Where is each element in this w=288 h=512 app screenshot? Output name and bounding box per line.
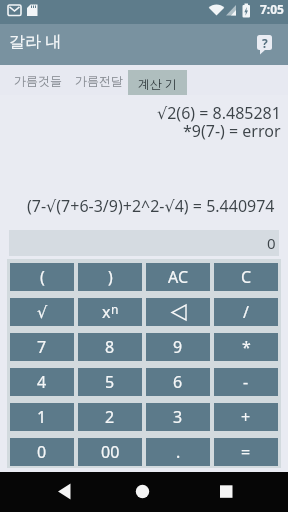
staticText: *9(7-) = error <box>183 120 281 142</box>
button[interactable]: 2 <box>78 403 142 431</box>
staticText: (7-√(7+6-3/9)+2^2-√4) = 5.440974 <box>27 195 275 217</box>
staticText: = <box>241 441 251 463</box>
staticText: 9 <box>173 336 183 358</box>
staticText: n <box>111 301 119 317</box>
staticText: / <box>243 301 249 323</box>
button[interactable]: 6 <box>146 368 210 396</box>
button[interactable]: + <box>214 403 278 431</box>
button[interactable]: 0 <box>10 438 74 466</box>
button[interactable]: = <box>214 438 278 466</box>
staticText: ( <box>40 266 45 288</box>
staticText: + <box>241 406 251 428</box>
button[interactable]: C <box>214 263 278 291</box>
button[interactable]: 7 <box>10 333 74 361</box>
staticText: . <box>176 441 181 463</box>
staticText: 8 <box>105 336 115 358</box>
button[interactable]: 9 <box>146 333 210 361</box>
button[interactable]: - <box>214 368 278 396</box>
button[interactable]: 가름것들 <box>7 65 68 95</box>
button[interactable]: 가름전달 <box>68 65 129 95</box>
staticText: √2(6) = 8.485281 <box>157 102 281 124</box>
button[interactable]: AC <box>146 263 210 291</box>
staticText: 5 <box>105 371 115 393</box>
button[interactable] <box>192 472 288 512</box>
staticText: ? <box>262 35 268 51</box>
button[interactable]: 00 <box>78 438 142 466</box>
staticText: 00 <box>101 441 120 463</box>
staticText: √ <box>37 303 48 322</box>
button[interactable]: ? <box>257 35 273 55</box>
staticText: 가름것들 <box>14 73 62 88</box>
button[interactable]: / <box>214 298 278 326</box>
staticText: 6 <box>173 371 183 393</box>
button[interactable]: x <box>78 298 142 326</box>
button[interactable]: 4 <box>10 368 74 396</box>
button[interactable]: 8 <box>78 333 142 361</box>
staticText: 7 <box>37 336 47 358</box>
button[interactable]: √ <box>10 298 74 326</box>
staticText: ) <box>108 266 113 288</box>
staticText: x <box>102 301 111 323</box>
staticText: 7:05 <box>260 1 284 17</box>
staticText: 가름전달 <box>75 73 123 88</box>
button[interactable] <box>96 472 192 512</box>
button[interactable]: 3 <box>146 403 210 431</box>
button[interactable] <box>0 472 96 512</box>
staticText: 갈라 내 <box>9 30 62 52</box>
button[interactable]: ( <box>10 263 74 291</box>
staticText: 2 <box>105 406 115 428</box>
button[interactable]: . <box>146 438 210 466</box>
button[interactable]: 1 <box>10 403 74 431</box>
staticText: 3 <box>173 406 183 428</box>
staticText: 4 <box>37 371 47 393</box>
button[interactable]: 5 <box>78 368 142 396</box>
staticText: C <box>241 266 252 288</box>
button[interactable] <box>146 298 210 326</box>
staticText: * <box>242 336 251 358</box>
staticText: 0 <box>267 233 276 253</box>
button[interactable]: 계산 기 <box>128 70 187 95</box>
staticText: AC <box>168 266 189 288</box>
staticText: 계산 기 <box>138 75 178 91</box>
staticText: - <box>243 371 249 393</box>
staticText: 1 <box>37 406 47 428</box>
button[interactable]: * <box>214 333 278 361</box>
button[interactable]: ) <box>78 263 142 291</box>
staticText: 0 <box>37 441 47 463</box>
